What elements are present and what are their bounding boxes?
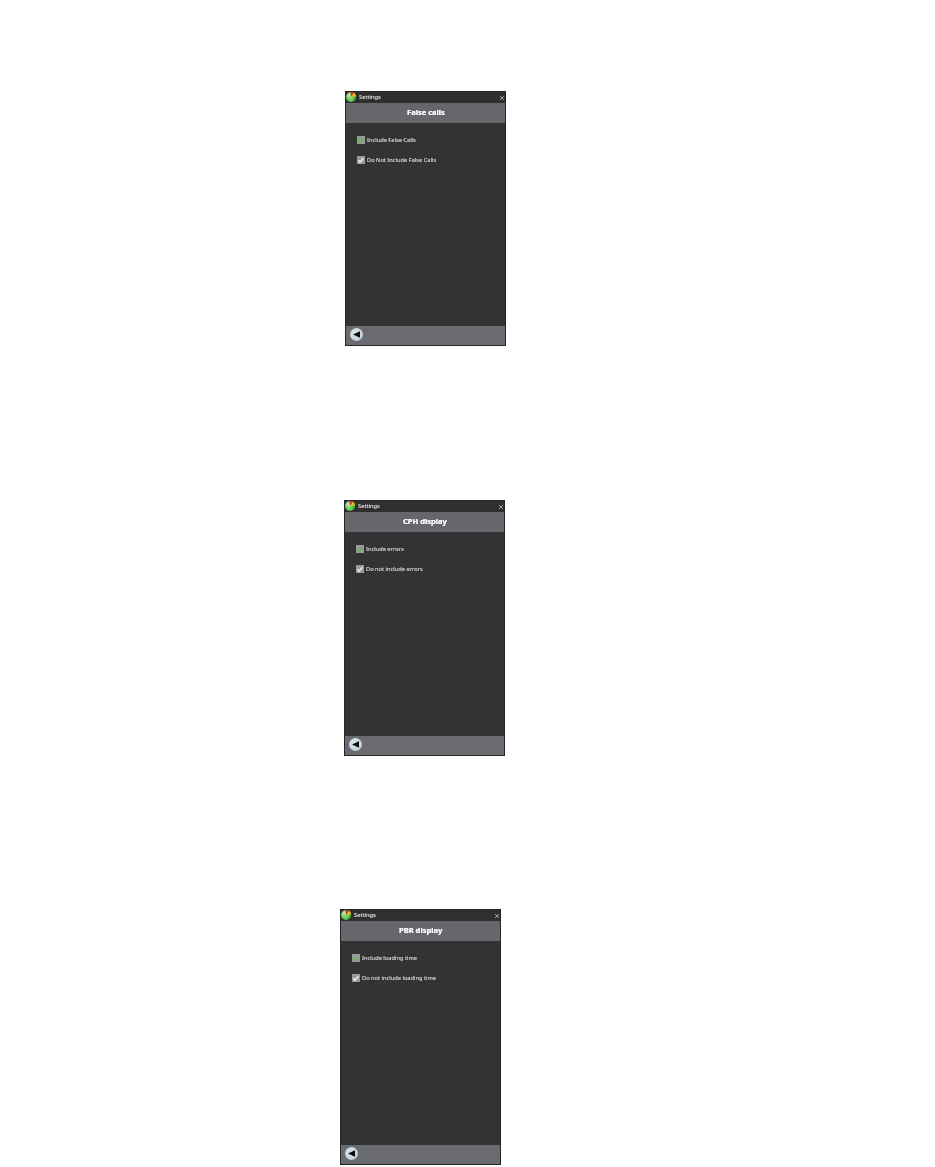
button[interactable]: Close bbox=[490, 910, 500, 920]
staticText: Do Not Include False Calls bbox=[367, 156, 437, 164]
button[interactable]: Include errors bbox=[344, 545, 505, 553]
staticText: Do not include errors bbox=[366, 565, 423, 573]
button[interactable]: Close bbox=[494, 501, 504, 511]
staticText: False calls bbox=[407, 107, 445, 117]
button[interactable]: Back bbox=[345, 1147, 358, 1160]
button[interactable]: Do not include loading time bbox=[340, 974, 501, 982]
staticText: Settings bbox=[358, 502, 380, 510]
staticText: PBR display bbox=[399, 925, 443, 935]
staticText: Include False Calls bbox=[367, 136, 416, 144]
button[interactable]: Include False Calls bbox=[345, 136, 506, 144]
button[interactable]: Close bbox=[495, 92, 505, 102]
button[interactable]: Back bbox=[350, 328, 363, 341]
button[interactable]: Include loading time bbox=[340, 954, 501, 962]
staticText: Do not include loading time bbox=[362, 974, 437, 982]
staticText: Settings bbox=[359, 93, 381, 101]
button[interactable]: Back bbox=[349, 738, 362, 751]
staticText: Include errors bbox=[366, 545, 404, 553]
staticText: Settings bbox=[354, 911, 376, 919]
staticText: Include loading time bbox=[362, 954, 417, 962]
button[interactable]: Do not include errors bbox=[344, 565, 505, 573]
staticText: CPH display bbox=[403, 516, 447, 526]
button[interactable]: Do Not Include False Calls bbox=[345, 156, 506, 164]
